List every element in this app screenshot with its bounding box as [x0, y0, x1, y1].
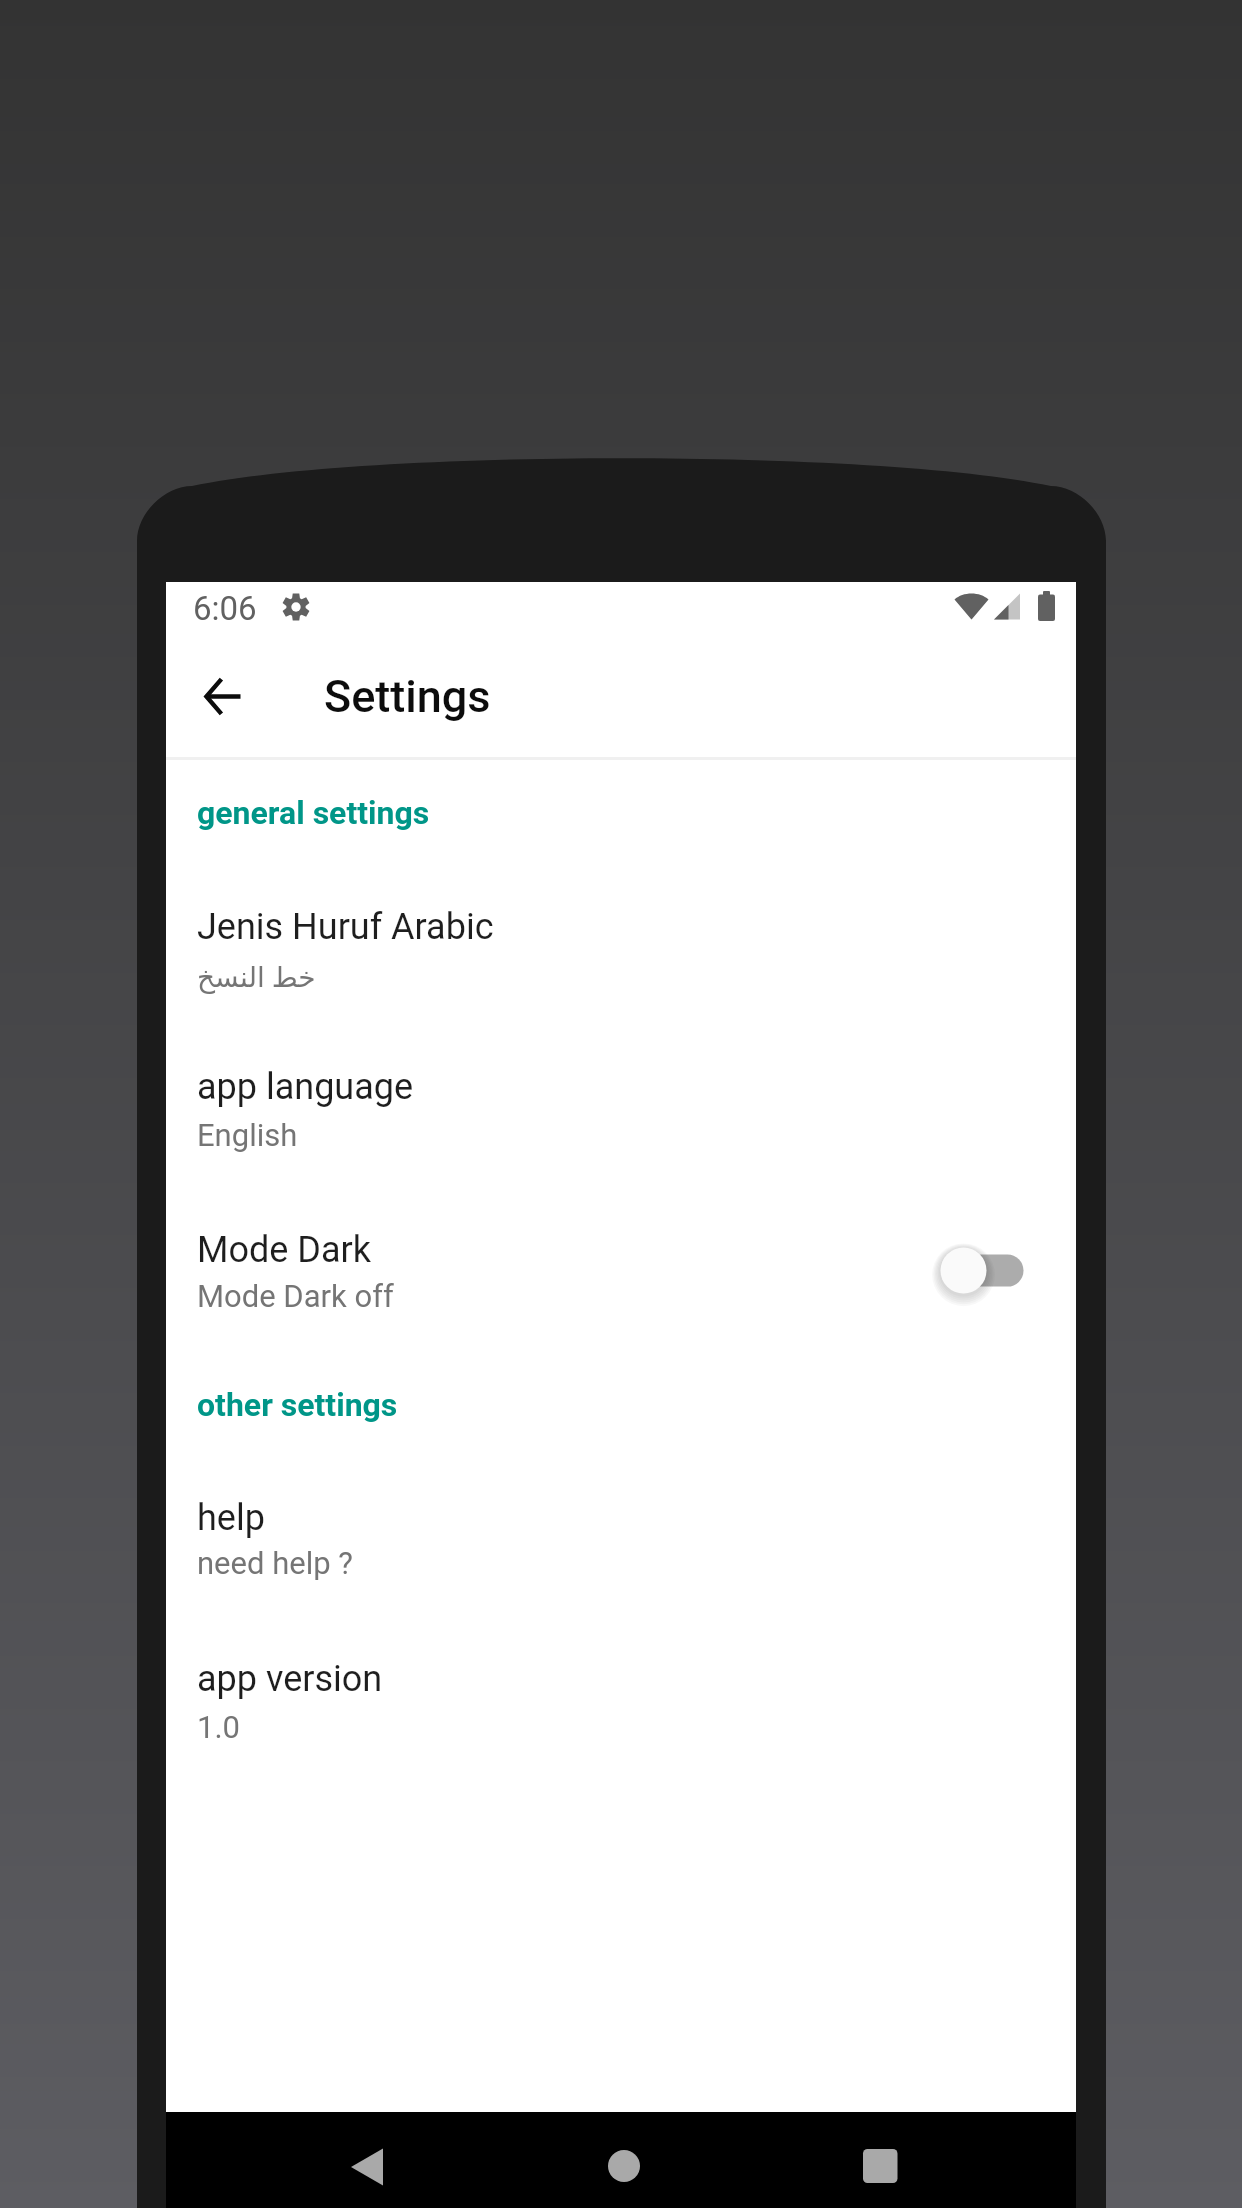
- button[interactable]: Back: [307, 2112, 427, 2208]
- staticText: general settings: [197, 794, 430, 832]
- staticText: help: [197, 1497, 265, 1539]
- staticText: Mode Dark: [197, 1229, 371, 1271]
- staticText: other settings: [197, 1386, 398, 1424]
- staticText: Jenis Huruf Arabic: [197, 906, 494, 948]
- staticText: need help ?: [197, 1545, 353, 1581]
- button[interactable]: app version: [166, 1637, 1076, 1787]
- button[interactable]: Jenis Huruf Arabic: [166, 884, 1076, 1034]
- staticText: Mode Dark off: [197, 1278, 394, 1314]
- staticText: app version: [197, 1658, 383, 1700]
- staticText: 6:06: [193, 589, 257, 628]
- staticText: 1.0: [197, 1709, 241, 1745]
- button[interactable]: Mode Dark: [166, 1207, 1076, 1357]
- button[interactable]: app language: [166, 1045, 1076, 1195]
- button[interactable]: Dark mode, off: [880, 1211, 1050, 1331]
- staticText: Settings: [324, 670, 491, 723]
- staticText: English: [197, 1117, 298, 1153]
- button[interactable]: Home: [562, 2112, 682, 2208]
- button[interactable]: Recent apps: [820, 2112, 940, 2208]
- staticText: خط النسخ: [197, 961, 316, 994]
- button[interactable]: help: [166, 1476, 1076, 1626]
- button[interactable]: Back: [174, 648, 270, 744]
- staticText: app language: [197, 1066, 414, 1108]
